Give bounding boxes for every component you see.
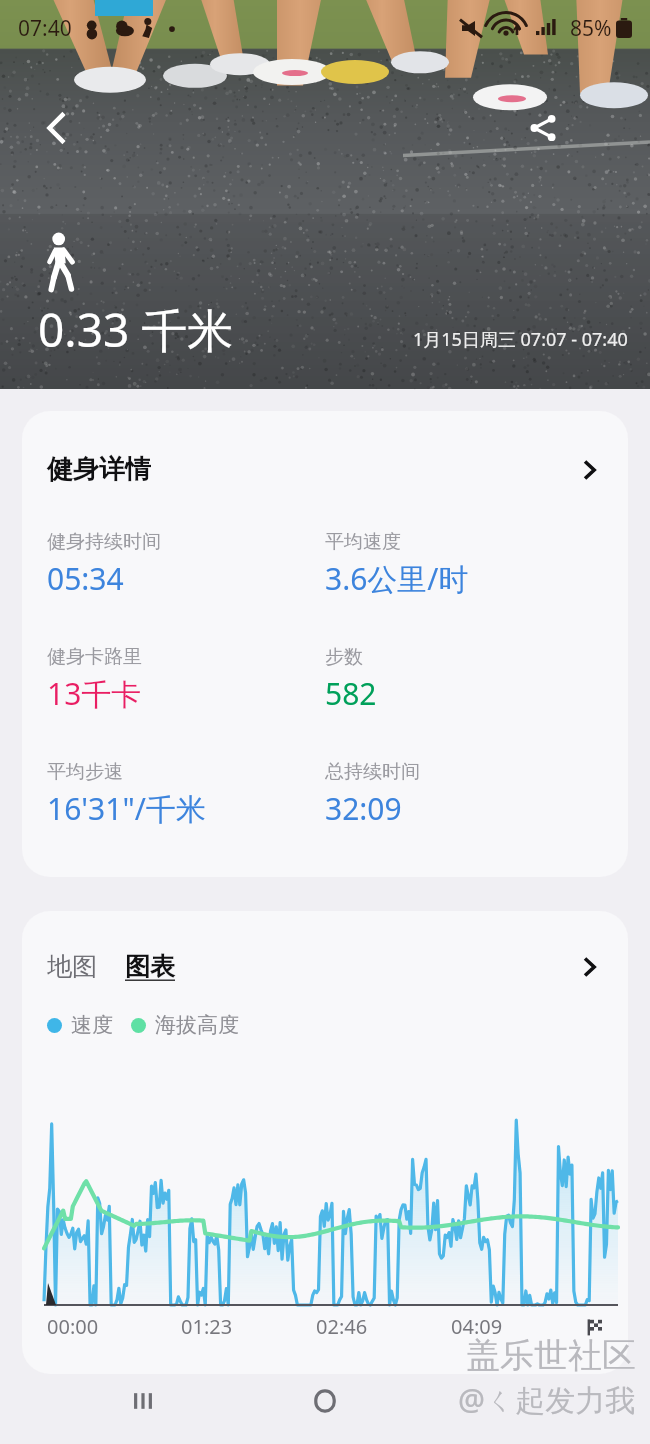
staticText: 02:46 [316, 1313, 368, 1340]
staticText: 1月15日周三 07:07 - 07:40 [413, 327, 628, 352]
staticText: 地图 [47, 951, 97, 982]
button[interactable]: 健身卡路里 [47, 645, 325, 714]
staticText: 0.33 千米 [38, 298, 234, 361]
staticText: 32:09 [325, 788, 402, 829]
staticText: 00:00 [47, 1313, 99, 1340]
button[interactable]: 平均步速 [47, 760, 325, 829]
button[interactable]: 图表 [125, 951, 175, 982]
button[interactable]: Back [30, 101, 84, 155]
staticText: 健身持续时间 [47, 530, 161, 554]
staticText: 3.6公里/时 [325, 558, 469, 599]
button[interactable]: Share [516, 101, 570, 155]
button[interactable]: Home [302, 1378, 348, 1424]
staticText: 平均速度 [325, 530, 401, 554]
staticText: 04:09 [451, 1313, 503, 1340]
staticText: 16'31"/千米 [47, 788, 206, 829]
button[interactable]: Recent apps [120, 1378, 166, 1424]
button[interactable]: Expand chart [577, 954, 603, 980]
button[interactable]: 地图 [47, 951, 97, 982]
button[interactable]: 健身详情 [22, 411, 628, 504]
staticText: 07:40 [18, 14, 72, 43]
staticText: 平均步速 [47, 760, 123, 784]
button[interactable]: 步数 [325, 645, 603, 714]
button[interactable]: 总持续时间 [325, 760, 603, 829]
staticText: 05:34 [47, 558, 124, 599]
staticText: 步数 [325, 645, 363, 669]
staticText: 图表 [125, 951, 175, 982]
button[interactable]: 平均速度 [325, 530, 603, 599]
staticText: 速度 [71, 1012, 113, 1038]
staticText: 582 [325, 673, 377, 714]
staticText: 盖乐世社区 [466, 1334, 636, 1377]
staticText: 01:23 [181, 1313, 233, 1340]
staticText: 总持续时间 [325, 760, 420, 784]
staticText: 健身卡路里 [47, 645, 142, 669]
staticText: 85% [570, 14, 612, 43]
staticText: 健身详情 [47, 453, 151, 486]
staticText: @ㄑ起发力我 [458, 1379, 636, 1420]
button[interactable]: 健身持续时间 [47, 530, 325, 599]
staticText: 13千卡 [47, 673, 142, 714]
staticText: 海拔高度 [155, 1012, 239, 1038]
